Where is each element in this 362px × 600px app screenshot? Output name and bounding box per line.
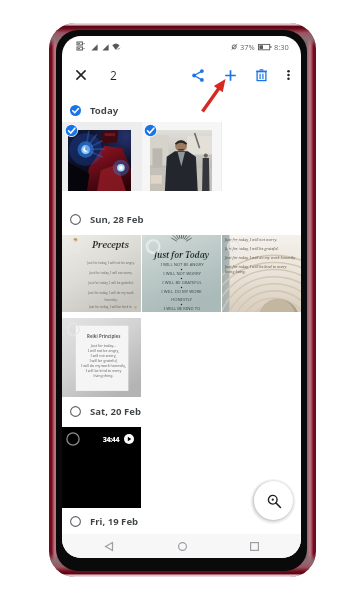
staticText: Just for today... I will not be angry, I… [81, 343, 126, 378]
button[interactable]: Home [157, 534, 207, 558]
staticText: I WILL NOT BE ANGRY [160, 262, 204, 268]
button[interactable]: Reiki Principles [62, 318, 141, 397]
button[interactable]: Delete [246, 57, 276, 93]
button[interactable]: Share [183, 57, 213, 93]
button[interactable]: Recent apps [229, 534, 279, 558]
staticText: Fri, 19 Feb [90, 515, 139, 528]
staticText: Just for Today [154, 249, 210, 260]
staticText: I WILL BE GRATEFUL [162, 280, 202, 286]
staticText: Precepts [92, 238, 129, 250]
staticText: 8:30 [274, 42, 289, 52]
staticText: Just for today, I will be grateful. [88, 281, 134, 285]
staticText: Just for today, I will not worry. [225, 237, 278, 242]
staticText: Sun, 28 Feb [90, 213, 144, 226]
staticText: Just for today, I will do my work honest… [225, 255, 296, 260]
staticText: Just for today, I will not worry. [89, 271, 133, 275]
staticText: Just for today, I will be kind to every … [89, 305, 132, 312]
button[interactable]: Zoom in [254, 481, 293, 520]
button[interactable]: Precepts [62, 235, 141, 312]
button[interactable]: Just for Today [142, 235, 221, 312]
staticText: Just for today, I will do my work honest… [88, 291, 134, 302]
staticText: Sat, 20 Feb [90, 405, 141, 418]
button[interactable]: Sat, 20 Feb [62, 397, 301, 427]
staticText: Just for today, I will not be angry. [87, 261, 135, 265]
button[interactable] [141, 122, 220, 191]
staticText: 37% [240, 42, 255, 52]
button[interactable]: Close [67, 57, 95, 93]
staticText: 34:44 [103, 435, 120, 444]
staticText: Just for today, I will be kind to every [225, 264, 287, 269]
staticText: 2 [110, 67, 117, 83]
staticText: Just for today, I will be grateful. [225, 246, 279, 251]
staticText: Reiki Principles [87, 333, 121, 339]
button[interactable]: More options [273, 57, 301, 93]
staticText: Today [90, 104, 119, 117]
button[interactable]: Sun, 28 Feb [62, 207, 301, 235]
staticText: living being. [225, 269, 246, 274]
button[interactable]: Add [215, 57, 245, 93]
button[interactable]: Fri, 19 Feb [62, 508, 301, 534]
staticText: I WILL NOT WORRY [163, 271, 201, 277]
button[interactable]: Just for today, I will not worry. [222, 235, 301, 312]
button[interactable]: Back [84, 534, 134, 558]
staticText: I WILL BE KIND TO EVERY LIVING THING [161, 306, 203, 312]
button[interactable]: Today [62, 93, 301, 122]
button[interactable]: 34:44 [62, 427, 141, 508]
button[interactable] [62, 122, 141, 191]
staticText: I WILL DO MY WORK HONESTLY [161, 289, 202, 303]
